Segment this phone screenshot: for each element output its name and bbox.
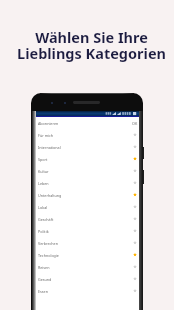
button[interactable]: Gesund (36, 273, 139, 285)
button[interactable]: Sport (36, 153, 139, 165)
staticText: Essen (38, 289, 48, 294)
staticText: Sport (38, 157, 48, 162)
button[interactable]: Kultur (36, 165, 139, 177)
staticText: International (38, 145, 61, 150)
staticText: Wählen Sie Ihre Lieblings Kategorien (9, 27, 174, 63)
button[interactable]: Leben (36, 177, 139, 189)
staticText: Unterhaltung (38, 193, 62, 198)
staticText: Reisen (38, 265, 50, 270)
button[interactable]: Lokal (36, 201, 139, 213)
button[interactable]: Geschäft (36, 213, 139, 225)
button[interactable]: International (36, 141, 139, 153)
button[interactable]: Essen (36, 285, 139, 297)
staticText: Technologie (38, 253, 59, 258)
staticText: Gesund (38, 277, 52, 282)
button[interactable]: Politik (36, 225, 139, 237)
button[interactable]: Reisen (36, 261, 139, 273)
staticText: Verbrechen (38, 241, 58, 246)
button[interactable]: Für mich (36, 129, 139, 141)
staticText: Politik (38, 229, 49, 234)
staticText: Geschäft (38, 217, 54, 222)
button[interactable]: Verbrechen (36, 237, 139, 249)
staticText: Kultur (38, 169, 49, 174)
staticText: Lokal (38, 205, 48, 210)
staticText: Für mich (38, 133, 54, 138)
button[interactable]: Abonnieren (36, 117, 139, 129)
staticText: Abonnieren (38, 121, 59, 126)
button[interactable]: Unterhaltung (36, 189, 139, 201)
button[interactable]: Technologie (36, 249, 139, 261)
staticText: Leben (38, 181, 49, 186)
staticText: OK (132, 121, 138, 126)
